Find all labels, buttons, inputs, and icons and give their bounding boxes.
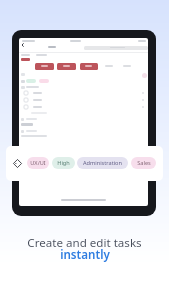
staticText: High [57, 159, 70, 167]
other: Tags [13, 159, 22, 168]
button[interactable]: High [52, 157, 75, 169]
other: Back [20, 42, 26, 48]
staticText: Create and edit tasks [27, 235, 142, 251]
button[interactable]: Administration [77, 157, 128, 169]
button[interactable] [24, 98, 28, 102]
staticText: Administration [83, 159, 122, 167]
staticText: Sales [137, 159, 151, 167]
staticText: instantly [60, 247, 110, 263]
button[interactable]: UX/UI [27, 157, 49, 169]
button[interactable] [24, 91, 28, 95]
button[interactable]: Sales [131, 157, 156, 169]
button[interactable] [24, 105, 28, 109]
staticText: UX/UI [30, 159, 46, 167]
